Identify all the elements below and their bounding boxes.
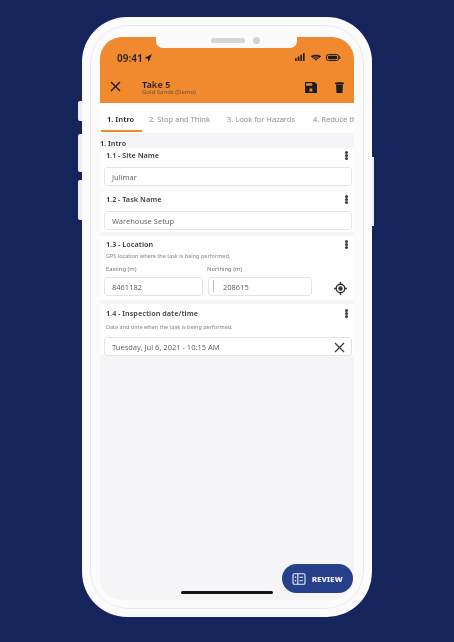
staticText: Easting (m) [106, 265, 137, 273]
staticText: Warehouse Setup [112, 216, 175, 226]
staticText: Date and time when the task is being per… [106, 323, 233, 330]
staticText: Take 5 [142, 78, 171, 90]
button[interactable]: 4. Reduce th [313, 112, 354, 125]
button[interactable]: Save [300, 76, 322, 98]
staticText: 208615 [223, 282, 249, 292]
staticText: 1.4 - Inspection date/time [106, 308, 199, 318]
button[interactable]: Julimar [104, 167, 352, 186]
staticText: 8461182 [112, 282, 143, 292]
staticText: 3. Look for Hazards [227, 114, 296, 124]
button[interactable]: More options [339, 148, 354, 162]
staticText: 1.1 - Site Name [106, 150, 160, 160]
staticText: GPS location where the task is being per… [106, 252, 231, 259]
staticText: 1. Intro [107, 114, 135, 124]
staticText: Gold Sands (Demo) [142, 88, 196, 96]
staticText: Tuesday, Jul 6, 2021 - 10:15 AM [112, 342, 220, 352]
staticText: REVIEW [312, 574, 343, 584]
button[interactable]: More options [339, 237, 354, 251]
button[interactable]: 2. Stop and Think [149, 112, 210, 125]
staticText: 1. Intro [100, 138, 127, 148]
button[interactable]: More options [339, 192, 354, 206]
button[interactable]: Get current location [331, 279, 349, 297]
staticText: 09:41 [117, 51, 143, 65]
staticText: 1.3 - Location [106, 239, 154, 249]
button[interactable]: More options [339, 306, 354, 320]
button[interactable]: Warehouse Setup [104, 211, 352, 230]
staticText: Northing (m) [207, 265, 243, 273]
button[interactable]: Tuesday, Jul 6, 2021 - 10:15 AM [104, 337, 352, 356]
button[interactable]: 8461182 [104, 277, 203, 296]
staticText: 1.2 - Task Name [106, 194, 162, 204]
staticText: 2. Stop and Think [149, 114, 210, 124]
button[interactable]: Close [104, 75, 127, 98]
button[interactable]: Clear date [332, 340, 346, 354]
button[interactable]: Delete [328, 76, 350, 98]
button[interactable]: REVIEW [282, 564, 353, 593]
button[interactable]: 3. Look for Hazards [227, 112, 296, 125]
staticText: 4. Reduce th [313, 114, 354, 124]
button[interactable]: 1. Intro [107, 112, 135, 125]
staticText: Julimar [112, 172, 137, 182]
button[interactable]: 208615 [208, 277, 312, 296]
